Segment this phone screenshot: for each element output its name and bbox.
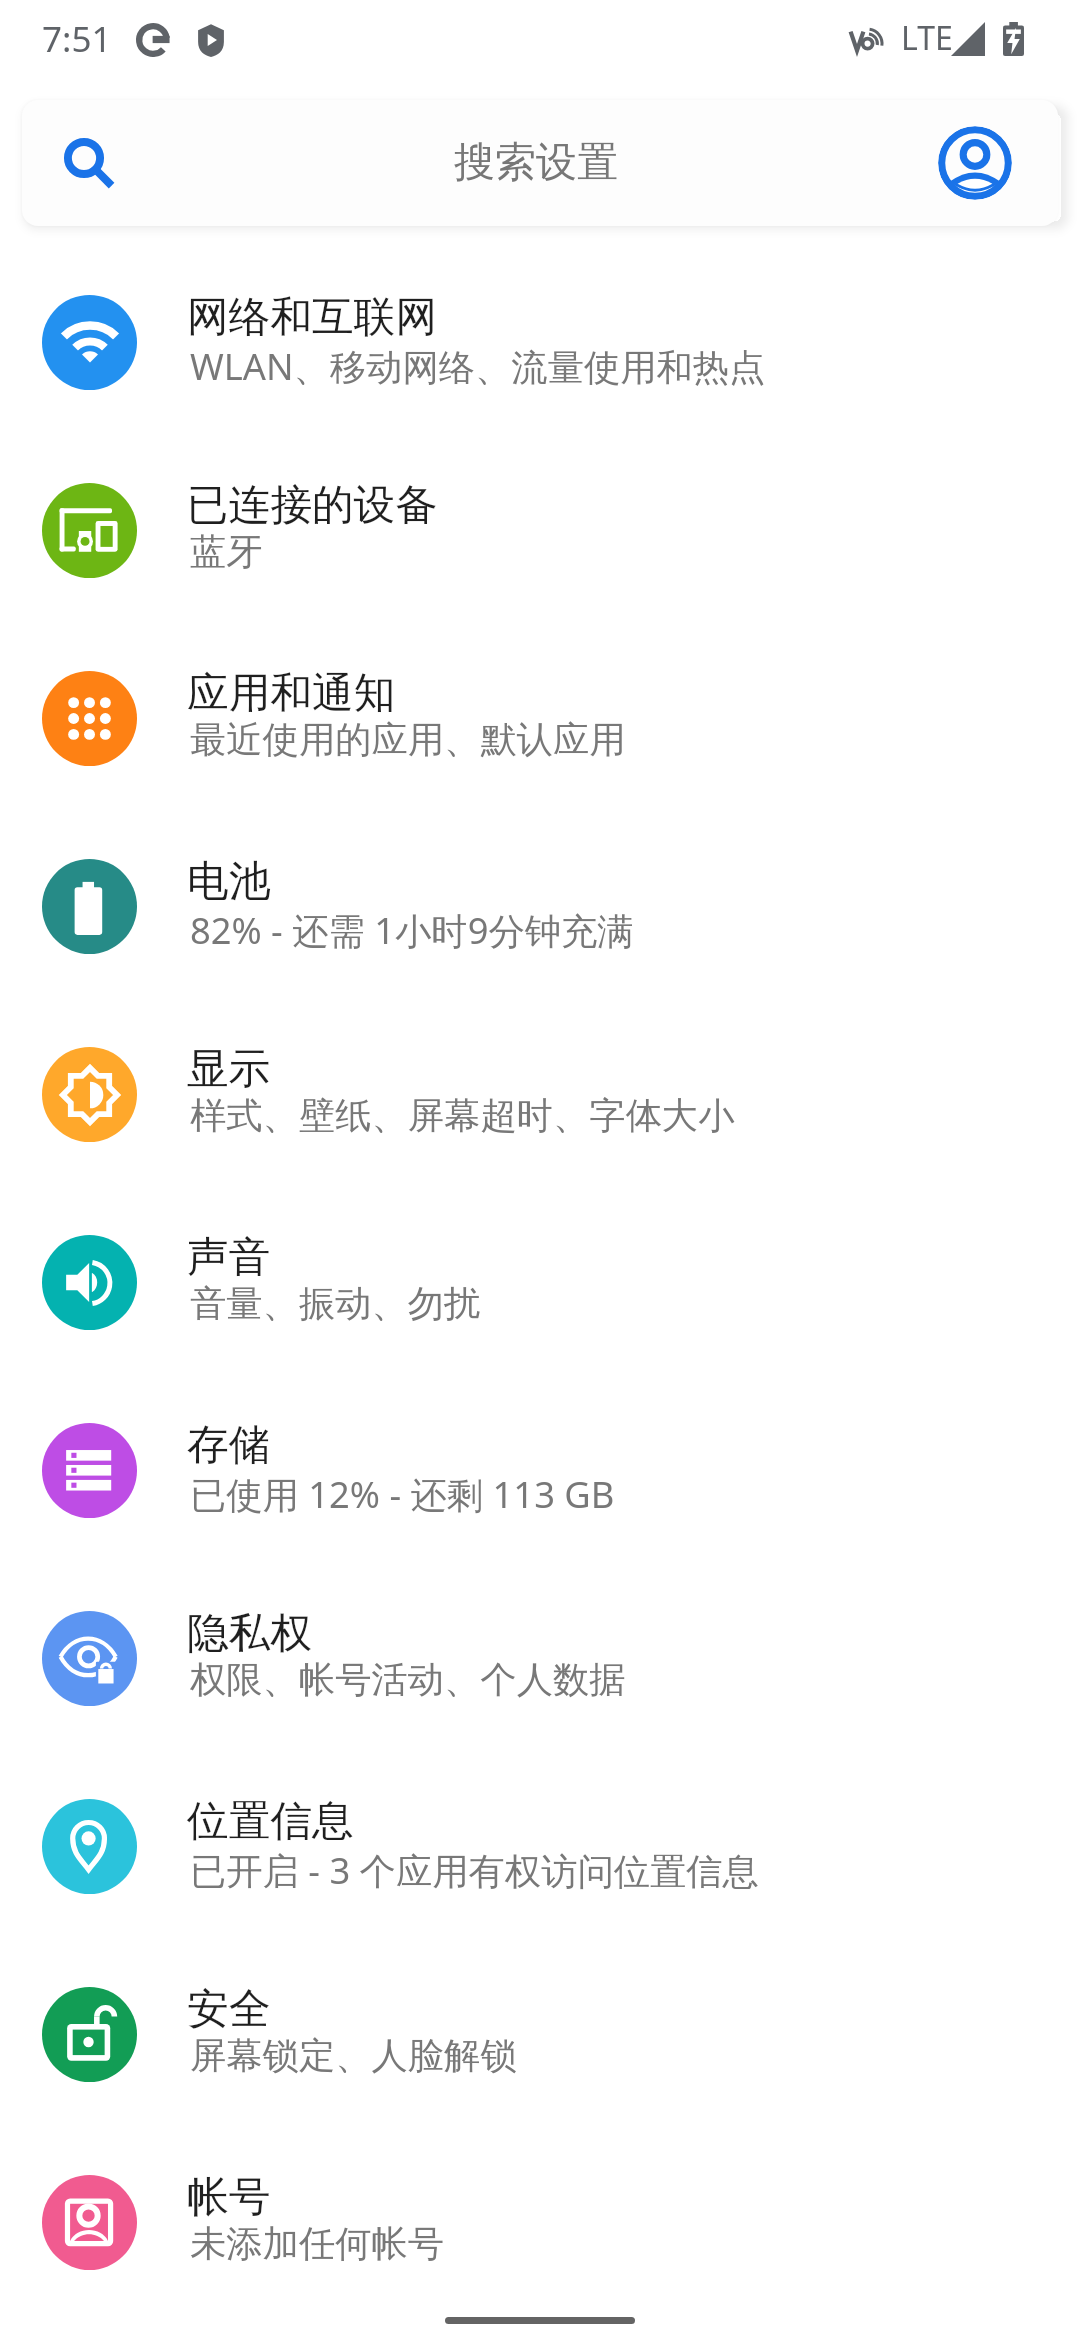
staticText: 应用和通知 <box>187 667 396 720</box>
staticText: 已使用 12% - 还剩 113 GB <box>190 1469 615 1519</box>
staticText: 样式、壁纸、屏幕超时、字体大小 <box>190 1093 735 1139</box>
staticText: 显示 <box>187 1043 271 1096</box>
staticText: WLAN、移动网络、流量使用和热点 <box>190 341 766 391</box>
staticText: 82% - 还需 1小时9分钟充满 <box>190 905 634 955</box>
staticText: 未添加任何帐号 <box>190 2221 445 2267</box>
button[interactable]: 应用和通知 <box>0 624 1080 812</box>
button[interactable]: 位置信息 <box>0 1752 1080 1940</box>
staticText: 音量、振动、勿扰 <box>190 1281 481 1327</box>
button[interactable]: 网络和互联网 <box>0 248 1080 436</box>
staticText: 已连接的设备 <box>187 479 438 532</box>
other: Search <box>66 140 114 188</box>
staticText: LTE <box>901 16 953 60</box>
button[interactable]: 隐私权 <box>0 1564 1080 1752</box>
staticText: 隐私权 <box>187 1607 313 1660</box>
staticText: 7:51 <box>42 15 112 63</box>
staticText: 声音 <box>187 1231 271 1284</box>
staticText: 权限、帐号活动、个人数据 <box>190 1657 626 1703</box>
staticText: 搜索设置 <box>454 137 618 189</box>
staticText: 最近使用的应用、默认应用 <box>190 717 626 763</box>
button[interactable]: 声音 <box>0 1188 1080 1376</box>
button[interactable]: 电池 <box>0 812 1080 1000</box>
button[interactable]: 显示 <box>0 1000 1080 1188</box>
staticText: 存储 <box>187 1419 271 1472</box>
staticText: 位置信息 <box>187 1795 354 1848</box>
button[interactable]: 已连接的设备 <box>0 436 1080 624</box>
button[interactable]: Search <box>22 100 1058 226</box>
button[interactable]: 存储 <box>0 1376 1080 1564</box>
staticText: 蓝牙 <box>190 529 263 575</box>
button[interactable]: 帐号 <box>0 2128 1080 2316</box>
staticText: 屏幕锁定、人脸解锁 <box>190 2033 517 2079</box>
staticText: 网络和互联网 <box>187 291 438 344</box>
staticText: 已开启 - 3 个应用有权访问位置信息 <box>190 1845 759 1895</box>
button[interactable]: 安全 <box>0 1940 1080 2128</box>
staticText: 安全 <box>187 1983 271 2036</box>
button[interactable]: Account <box>938 126 1012 200</box>
staticText: 电池 <box>187 855 271 908</box>
staticText: 帐号 <box>187 2171 271 2224</box>
